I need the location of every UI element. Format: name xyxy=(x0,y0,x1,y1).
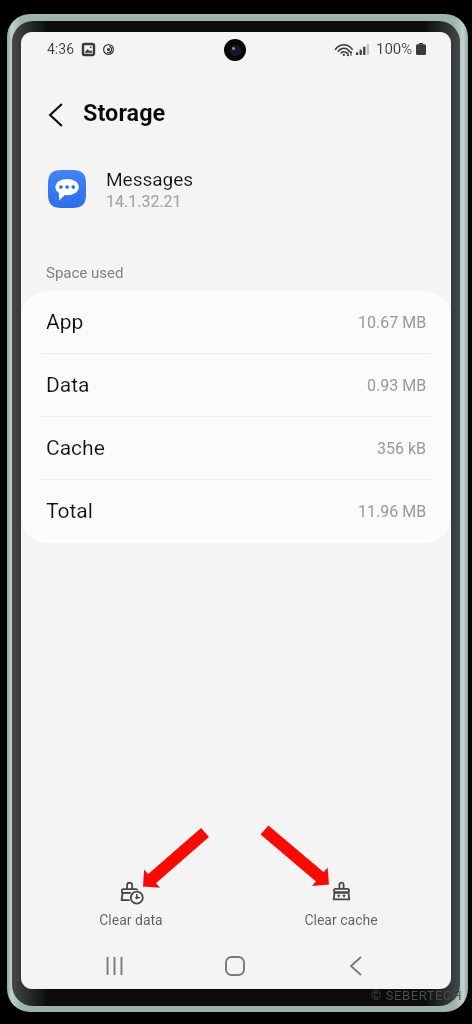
staticText: Clear cache xyxy=(289,912,393,928)
staticText: App xyxy=(46,310,84,335)
button[interactable]: Recents xyxy=(88,940,140,989)
button[interactable]: Cache xyxy=(21,417,451,480)
staticText: 100% xyxy=(376,40,413,58)
staticText: Total xyxy=(46,499,93,524)
button[interactable]: Total xyxy=(21,480,451,543)
staticText: Clear data xyxy=(79,912,183,928)
button[interactable]: Data xyxy=(21,354,451,417)
staticText: Messages xyxy=(106,168,194,190)
button[interactable]: App xyxy=(21,291,451,354)
button[interactable]: Navigate up xyxy=(32,91,80,139)
button[interactable]: Clear data xyxy=(79,870,183,930)
button[interactable]: Home xyxy=(209,940,261,989)
staticText: 356 kB xyxy=(377,439,427,458)
staticText: Storage xyxy=(83,99,166,127)
staticText: Cache xyxy=(46,436,105,461)
staticText: 0.93 MB xyxy=(367,376,427,395)
staticText: 4:36 xyxy=(47,41,74,57)
staticText: 14.1.32.21 xyxy=(106,192,182,211)
staticText: Data xyxy=(46,373,90,398)
staticText: 10.67 MB xyxy=(358,313,427,332)
button[interactable]: Clear cache xyxy=(289,870,393,930)
staticText: © SEBERTECH xyxy=(371,988,463,1003)
staticText: Space used xyxy=(46,264,124,282)
staticText: 11.96 MB xyxy=(358,502,427,521)
button[interactable]: Messages xyxy=(21,160,451,218)
button[interactable]: Back xyxy=(330,940,382,989)
